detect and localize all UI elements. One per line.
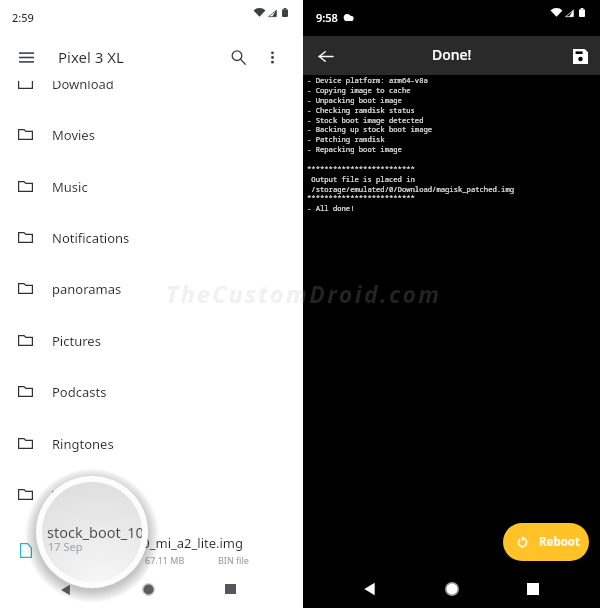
- staticText: - Unpacking boot image: [307, 95, 402, 105]
- button[interactable]: Recents: [223, 582, 237, 596]
- staticText: Pixel 3 XL: [58, 47, 124, 67]
- staticText: Podcasts: [52, 383, 107, 401]
- staticText: Pictures: [52, 332, 101, 350]
- staticText: - Checking ramdisk status: [307, 105, 415, 115]
- staticText: - All done!: [307, 203, 355, 213]
- button[interactable]: panoramas: [0, 263, 303, 314]
- staticText: 9:58: [316, 10, 338, 25]
- staticText: 17 Sep: [48, 539, 83, 554]
- staticText: Done!: [432, 45, 472, 64]
- button[interactable]: Reboot: [503, 523, 589, 561]
- staticText: 67.11 MB: [145, 554, 185, 566]
- staticText: TheCustomDroid.com: [166, 278, 303, 309]
- staticText: 2:59: [12, 10, 34, 25]
- button[interactable]: W: [0, 469, 303, 520]
- staticText: - Patching ramdisk: [307, 134, 385, 144]
- staticText: - Device platform: arm64-v8a: [307, 75, 428, 85]
- button[interactable]: Download: [0, 81, 303, 109]
- button[interactable]: Save: [569, 45, 591, 67]
- button[interactable]: Movies: [0, 109, 303, 160]
- staticText: Notifications: [52, 229, 130, 247]
- button[interactable]: More options: [258, 43, 286, 71]
- button[interactable]: Back: [313, 43, 339, 69]
- staticText: W: [52, 486, 65, 504]
- button[interactable]: Home: [140, 581, 156, 597]
- staticText: Download: [52, 81, 114, 93]
- button[interactable]: Recents: [526, 582, 540, 596]
- staticText: Ringtones: [52, 435, 114, 453]
- staticText: - Copying image to cache: [307, 85, 411, 95]
- button[interactable]: stock_boot_10.0_mi_a2_lite.img: [0, 524, 303, 571]
- button[interactable]: Back: [361, 581, 377, 597]
- staticText: - Repacking boot image: [307, 144, 402, 154]
- staticText: - Stock boot image detected: [307, 115, 424, 125]
- button[interactable]: Music: [0, 161, 303, 212]
- staticText: /storage/emulated/0/Download/magisk_patc…: [307, 184, 515, 194]
- button[interactable]: Ringtones: [0, 418, 303, 469]
- staticText: BIN file: [218, 554, 249, 566]
- staticText: Reboot: [539, 534, 581, 550]
- staticText: stock_boot_10.0: [47, 522, 142, 542]
- staticText: Music: [52, 178, 88, 196]
- staticText: - Backing up stock boot image: [307, 124, 433, 134]
- staticText: Output file is placed in: [307, 174, 415, 184]
- staticText: Movies: [52, 126, 95, 144]
- staticText: panoramas: [52, 280, 122, 298]
- button[interactable]: Search: [224, 43, 252, 71]
- staticText: TheCustomDroid.com: [303, 278, 442, 309]
- button[interactable]: Menu: [12, 43, 40, 71]
- staticText: stock_boot_10.0_mi_a2_lite.img: [52, 534, 243, 552]
- button[interactable]: Back: [58, 583, 72, 597]
- button[interactable]: Pictures: [0, 315, 303, 366]
- staticText: *************************: [307, 193, 415, 203]
- button[interactable]: Podcasts: [0, 366, 303, 417]
- staticText: *************************: [307, 164, 415, 174]
- button[interactable]: Home: [444, 581, 460, 597]
- button[interactable]: Notifications: [0, 212, 303, 263]
